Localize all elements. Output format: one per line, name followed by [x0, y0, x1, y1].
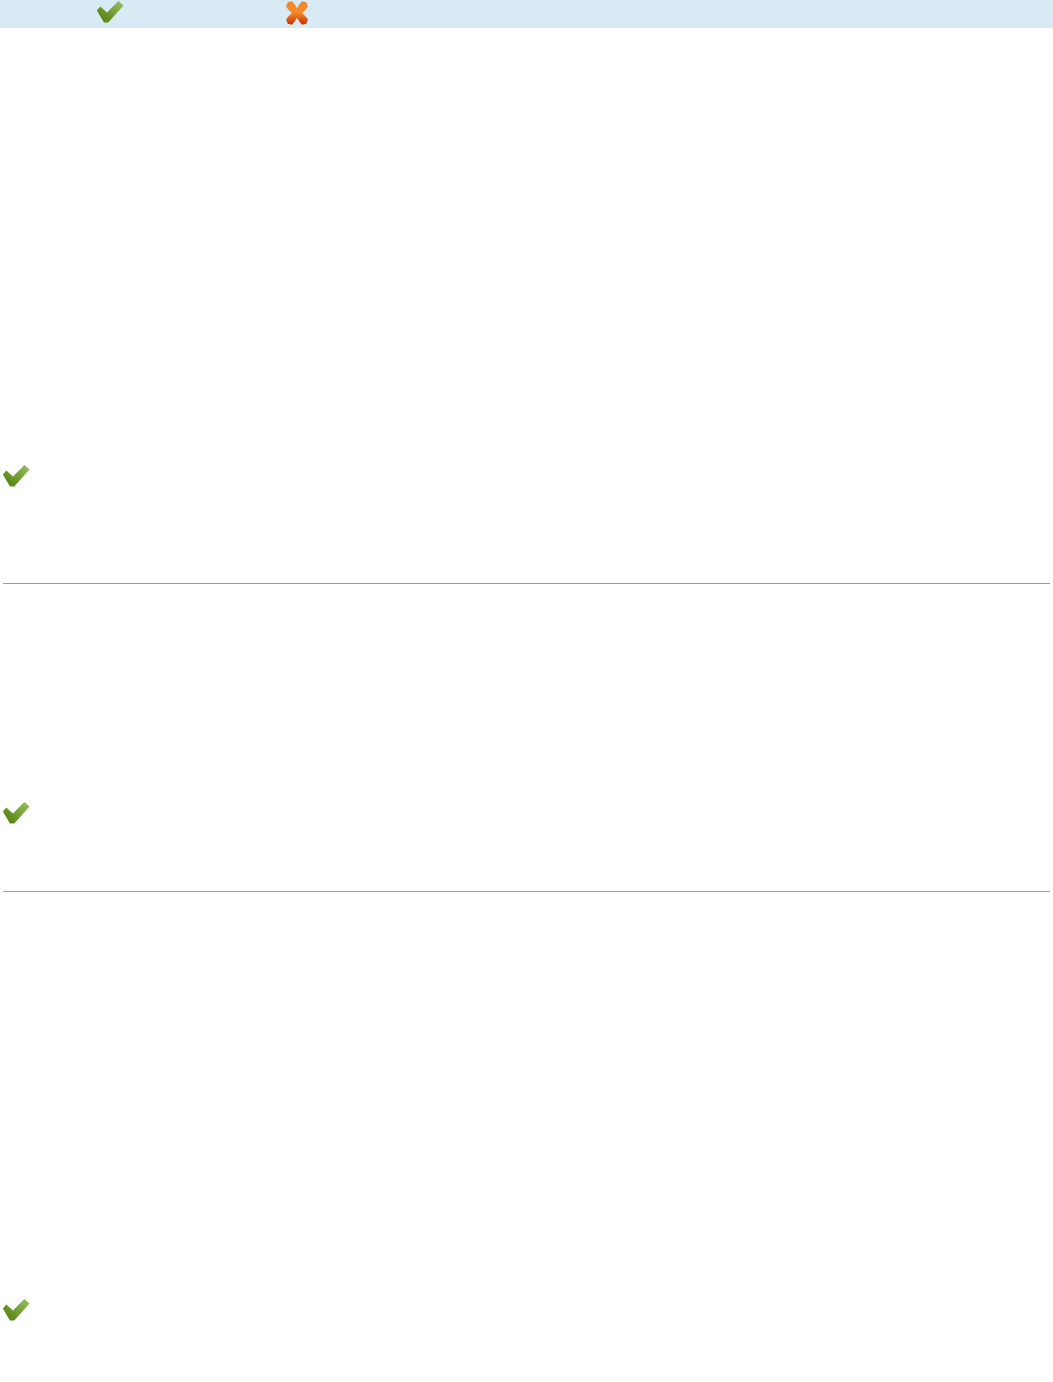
button[interactable]: Supported — [0, 1285, 1053, 1333]
button[interactable]: Reject — [281, 0, 313, 28]
button[interactable]: Supported — [0, 788, 1053, 836]
button[interactable]: Supported — [0, 451, 1053, 499]
button[interactable]: Accept — [92, 0, 128, 28]
